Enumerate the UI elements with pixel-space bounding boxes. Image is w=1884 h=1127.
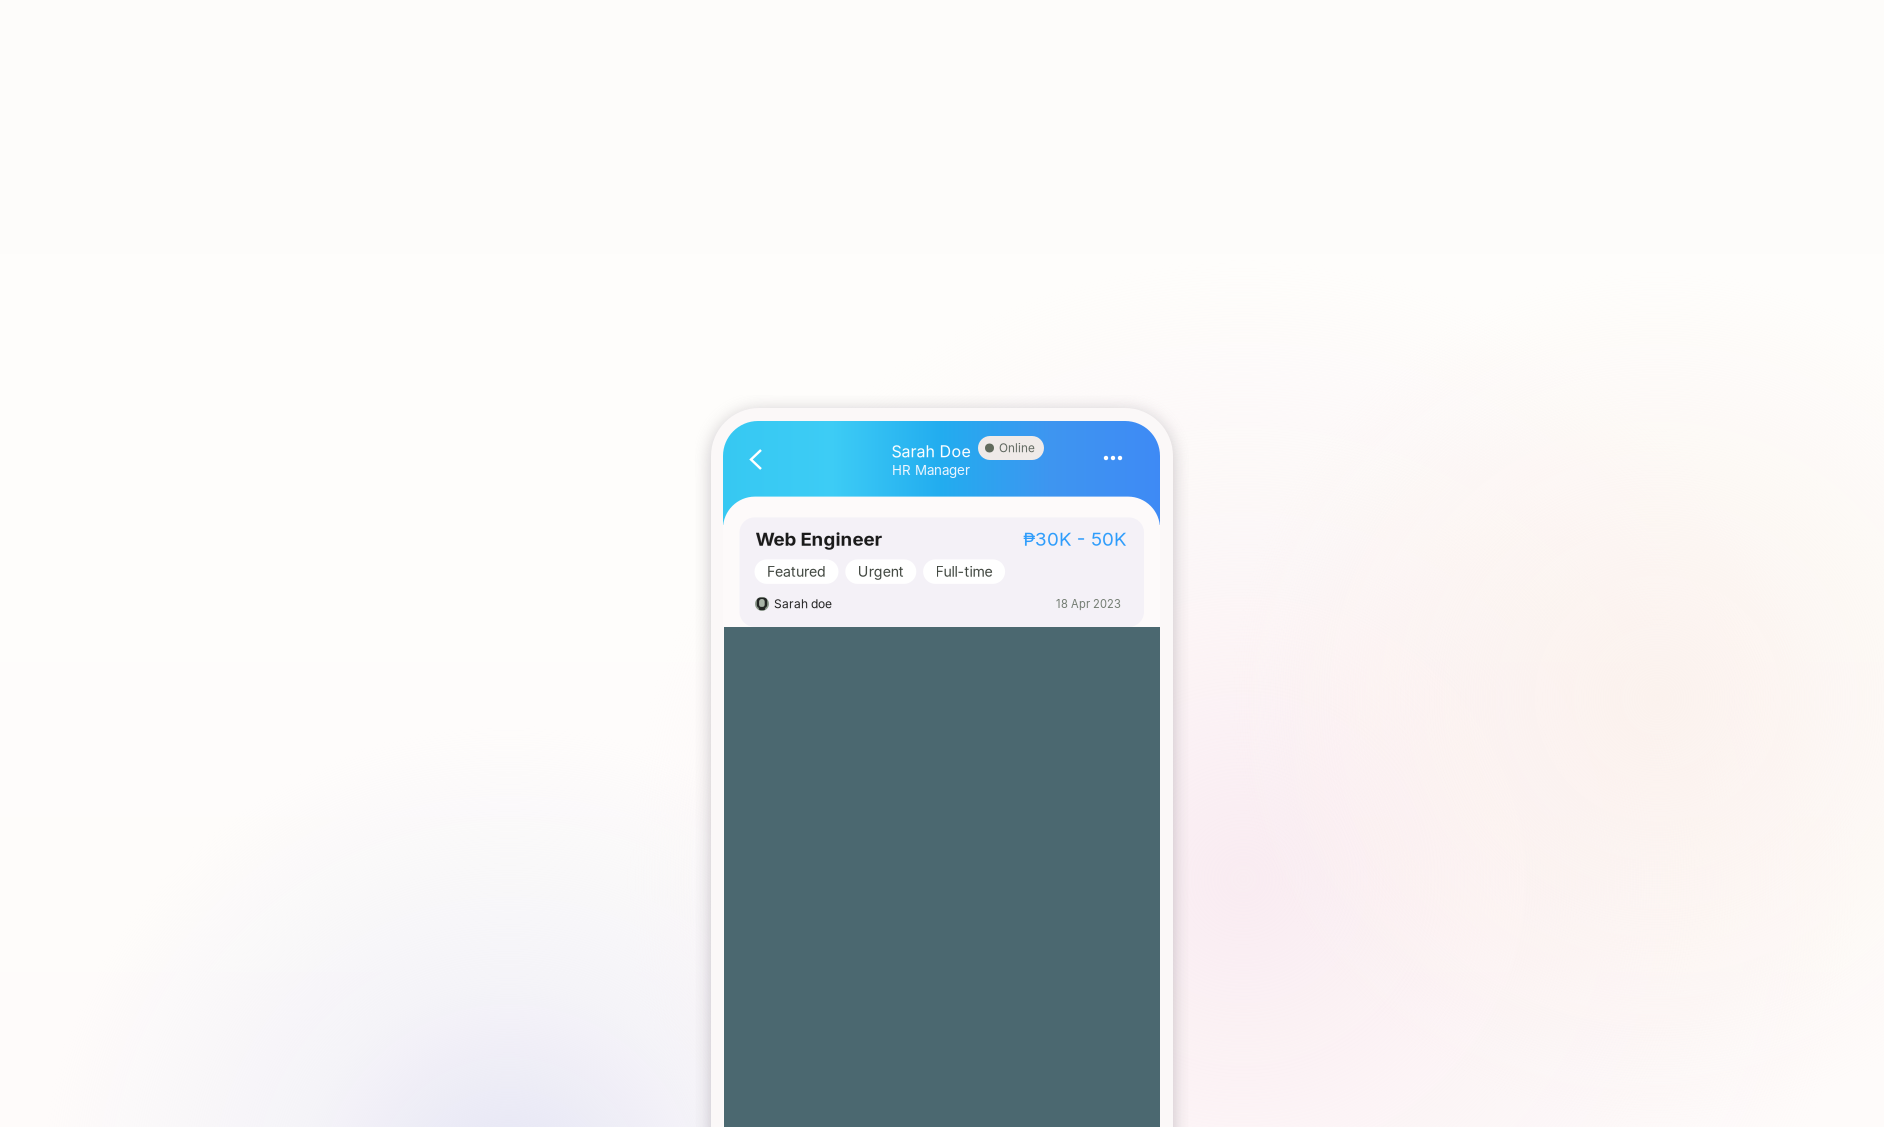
staticText: 18 Apr 2023 <box>1056 597 1121 611</box>
button[interactable]: Back <box>735 439 775 479</box>
staticText: Sarah Doe <box>891 442 970 461</box>
staticText: Web Engineer <box>755 528 882 550</box>
staticText: ₱30K - 50K <box>1023 528 1127 550</box>
staticText: Urgent <box>858 563 904 580</box>
staticText: Featured <box>767 563 826 580</box>
button[interactable]: More options <box>1093 438 1133 478</box>
staticText: Online <box>999 441 1035 455</box>
staticText: Sarah doe <box>774 597 832 611</box>
staticText: Full-time <box>936 563 993 580</box>
staticText: HR Manager <box>892 462 970 478</box>
